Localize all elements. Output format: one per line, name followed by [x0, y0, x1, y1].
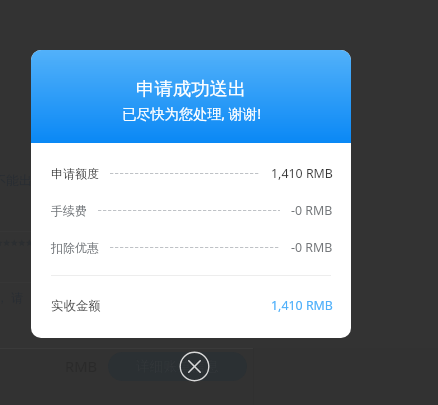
staticText: 1,410 RMB — [271, 165, 333, 182]
staticText: 已尽快为您处理, 谢谢! — [122, 104, 261, 123]
staticText: -0 RMB — [291, 239, 333, 256]
staticText: -0 RMB — [291, 202, 333, 219]
staticText: 手续费 — [51, 203, 87, 218]
staticText: 不能出 — [0, 172, 32, 188]
staticText: 申请额度 — [51, 166, 99, 181]
staticText: 扣除优惠 — [51, 240, 99, 255]
button[interactable]: 详细账单信息 — [108, 352, 247, 381]
staticText: 实收金额 — [51, 298, 101, 314]
staticText: 详细账单信息 — [136, 358, 219, 375]
staticText: 1,410 RMB — [271, 297, 333, 314]
button[interactable]: Close — [179, 351, 210, 382]
staticText: 申请成功送出 — [136, 77, 247, 100]
